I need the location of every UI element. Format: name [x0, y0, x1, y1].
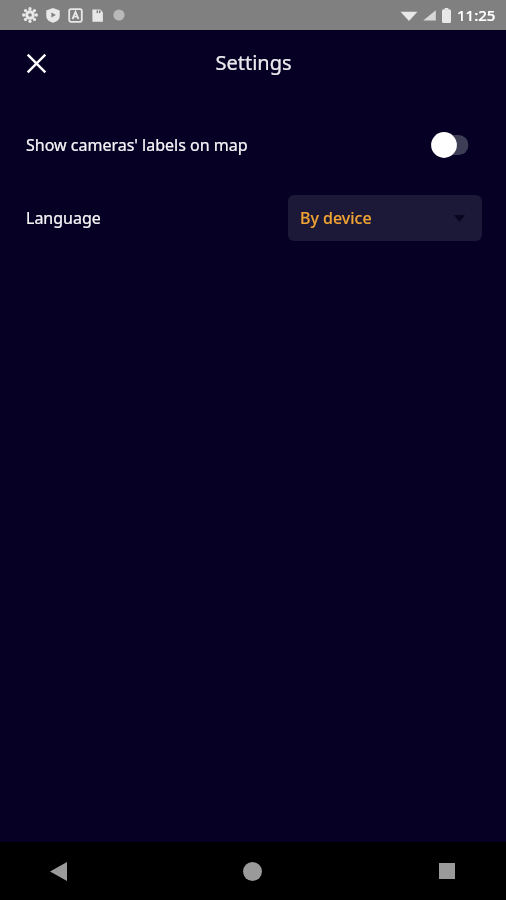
button[interactable]: Show cameras' labels on map: [0, 123, 506, 167]
staticText: Settings: [215, 49, 292, 76]
staticText: By device: [300, 207, 372, 229]
button[interactable]: Back: [0, 842, 168, 900]
button[interactable]: By device: [288, 195, 482, 241]
button[interactable]: Close: [12, 39, 60, 87]
staticText: 11:25: [457, 5, 496, 25]
button[interactable]: Home: [168, 842, 337, 900]
button[interactable]: Show cameras labels on map toggle: [430, 131, 482, 159]
staticText: Language: [26, 207, 101, 229]
button[interactable]: Recent apps: [337, 842, 506, 900]
staticText: Show cameras' labels on map: [26, 134, 248, 156]
